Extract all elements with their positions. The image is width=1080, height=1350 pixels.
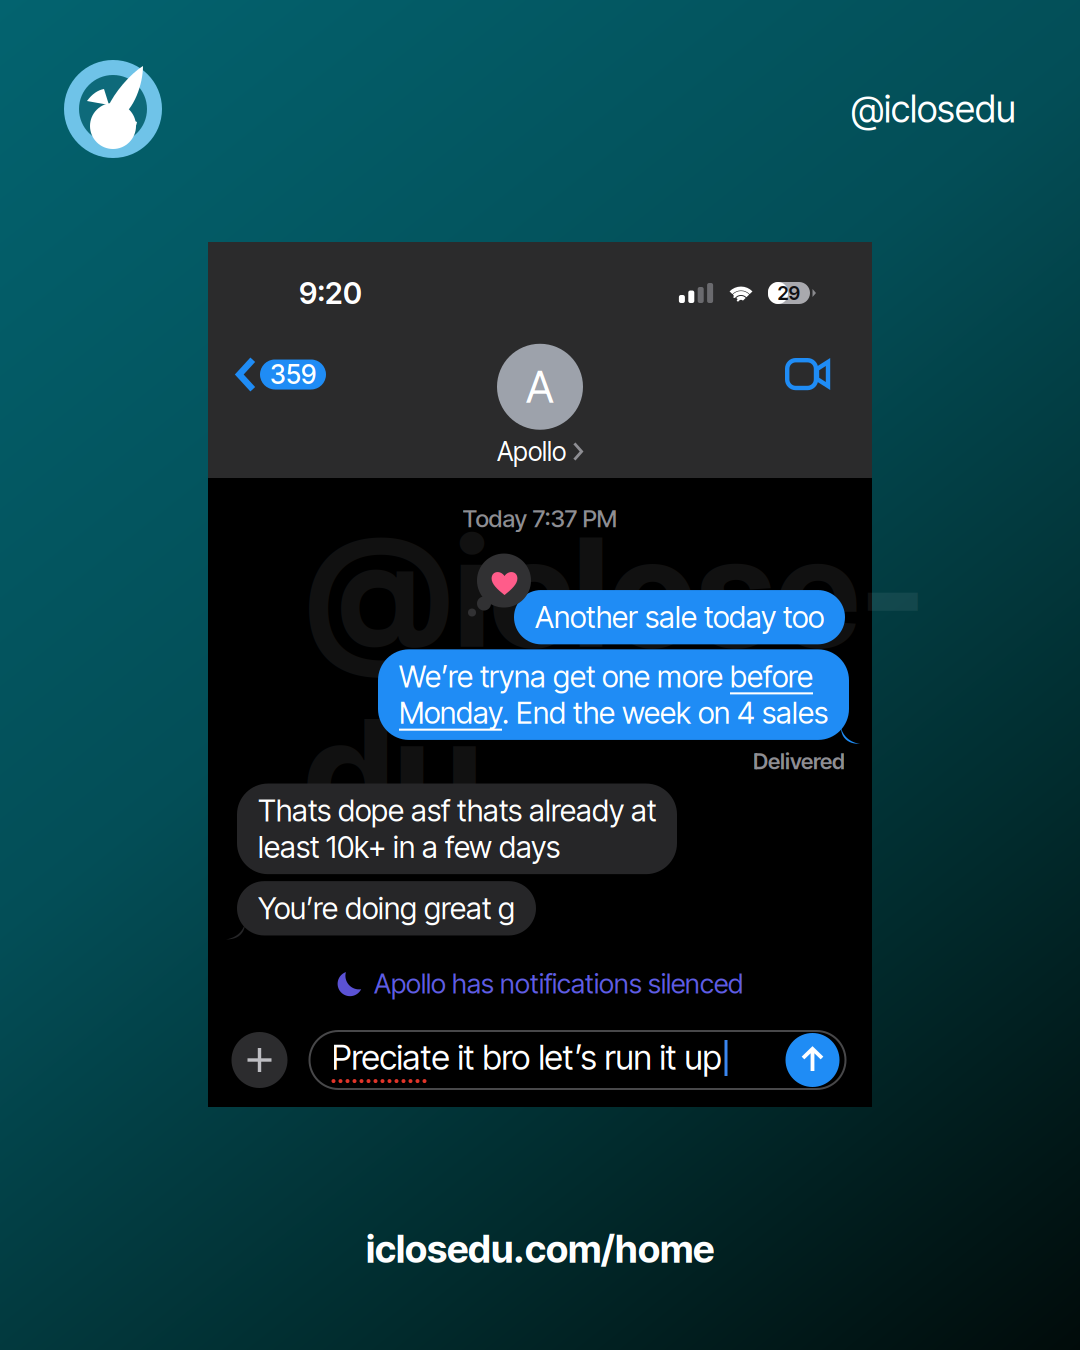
- button[interactable]: Add attachment: [231, 1032, 287, 1088]
- staticText: Apollo: [497, 436, 566, 467]
- button[interactable]: Back to 359 conversations: [236, 354, 326, 394]
- staticText: Preciate it bro let’s run it up: [331, 1037, 721, 1078]
- staticText: @iclosedu: [851, 87, 1016, 131]
- staticText: 9:20: [299, 275, 362, 311]
- staticText: Thats dope asf thats already at least 10…: [258, 793, 656, 865]
- staticText: Another sale today too: [535, 599, 824, 635]
- staticText: A: [526, 360, 554, 413]
- staticText: Today 7:37 PM: [462, 504, 617, 533]
- staticText: We’re tryna get one more before Monday. …: [399, 658, 828, 731]
- staticText: iclosedu.com/home: [366, 1226, 714, 1272]
- button[interactable]: Send: [785, 1033, 839, 1087]
- staticText: You’re doing great g: [258, 890, 515, 926]
- staticText: 359: [270, 359, 316, 390]
- button[interactable]: FaceTime: [785, 354, 831, 394]
- staticText: 29: [777, 281, 800, 304]
- button[interactable]: A: [425, 341, 655, 469]
- staticText: Apollo has notifications silenced: [374, 967, 743, 1000]
- staticText: @iclosedu: [304, 501, 924, 864]
- staticText: Delivered: [753, 748, 845, 774]
